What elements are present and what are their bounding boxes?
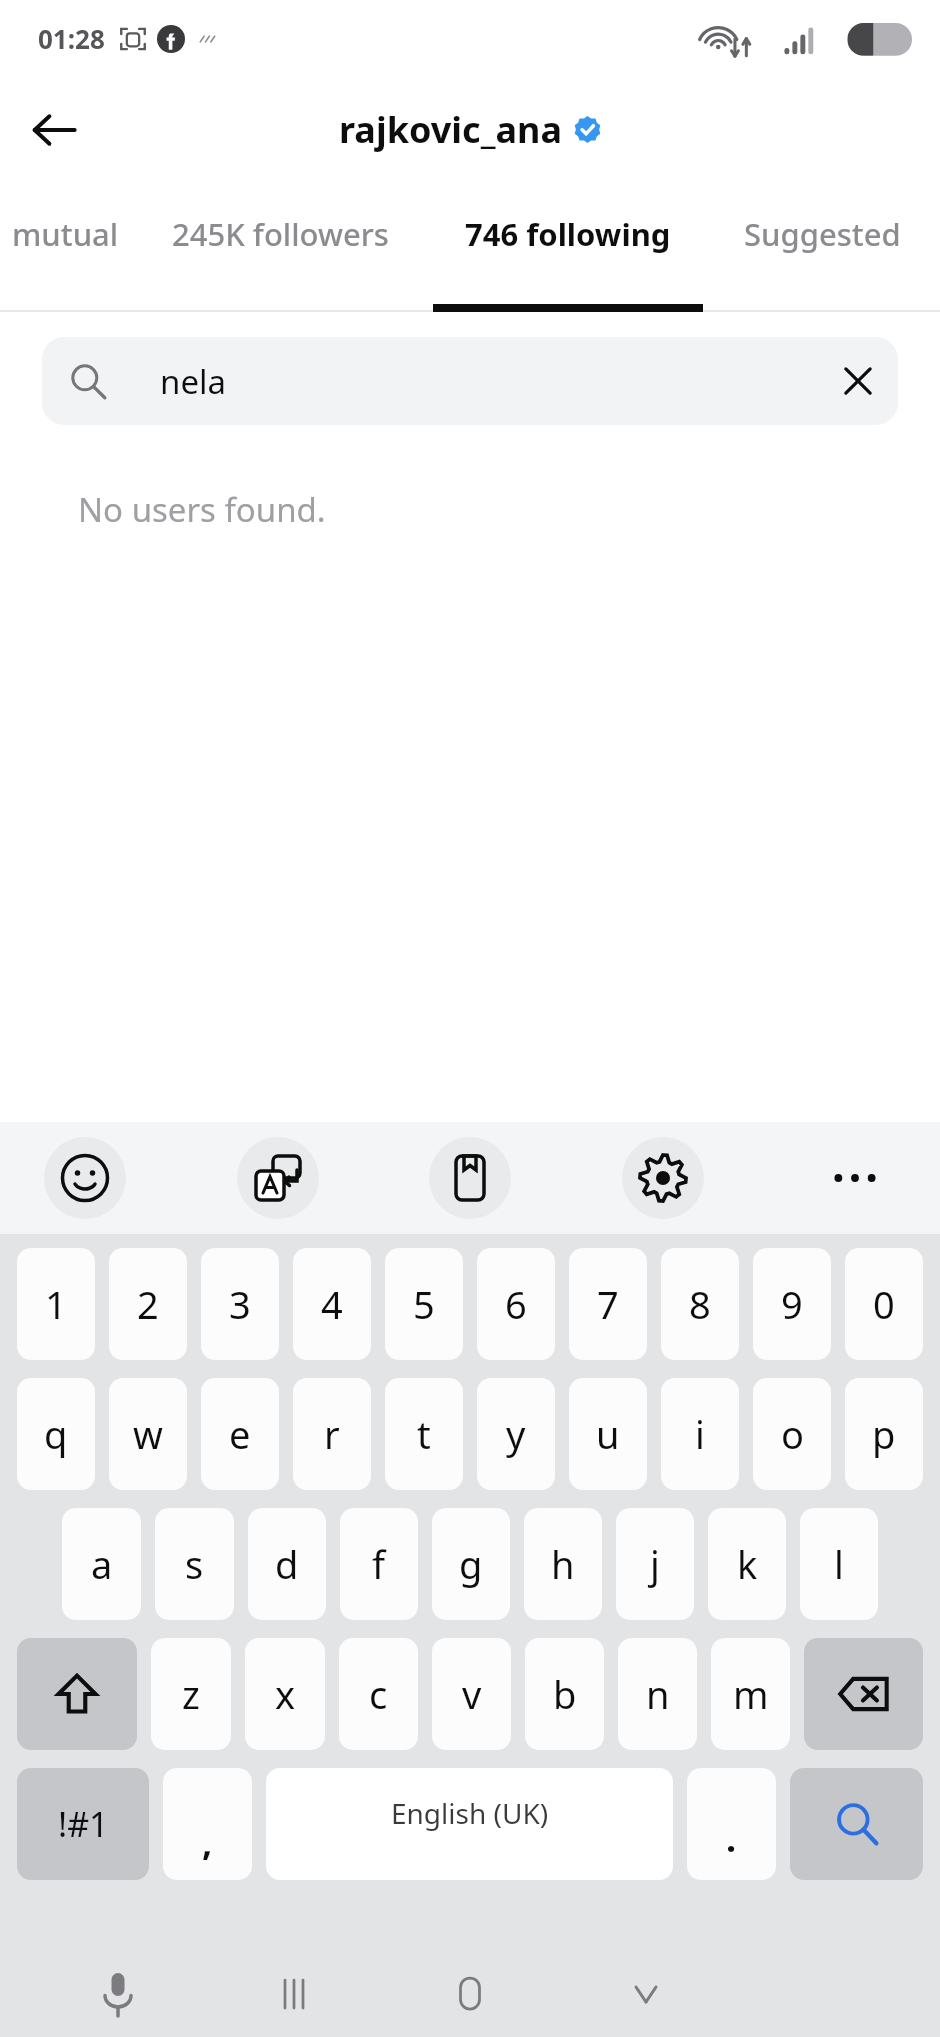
staticText: 3 <box>229 1278 251 1330</box>
staticText: No users found. <box>78 487 326 532</box>
button[interactable]: Voice input <box>30 1950 206 2037</box>
button[interactable]: Hide keyboard <box>558 1950 734 2037</box>
button[interactable]: 1 <box>17 1248 95 1360</box>
button[interactable]: Emoji <box>44 1137 126 1219</box>
staticText: m <box>733 1668 769 1720</box>
button[interactable]: More options <box>814 1137 896 1219</box>
button[interactable]: Home <box>382 1950 558 2037</box>
staticText: n <box>646 1668 670 1720</box>
button[interactable]: j <box>616 1508 694 1620</box>
button[interactable]: z <box>151 1638 231 1750</box>
button[interactable]: 2 <box>109 1248 187 1360</box>
staticText: e <box>229 1408 251 1460</box>
button[interactable]: r <box>293 1378 371 1490</box>
button[interactable]: x <box>245 1638 325 1750</box>
button[interactable]: u <box>569 1378 647 1490</box>
staticText: o <box>781 1408 804 1460</box>
button[interactable]: n <box>618 1638 697 1750</box>
staticText: 746 following <box>465 213 671 255</box>
staticText: 1 <box>45 1278 67 1330</box>
button[interactable]: 245K followers <box>130 182 430 312</box>
staticText: f <box>372 1538 386 1590</box>
staticText: 6 <box>505 1278 527 1330</box>
staticText: . <box>726 1814 737 1863</box>
button[interactable]: Back <box>18 94 90 166</box>
button[interactable]: 0 <box>845 1248 923 1360</box>
button[interactable]: Translate <box>237 1137 319 1219</box>
button[interactable]: 746 following <box>430 182 705 312</box>
staticText: s <box>185 1538 204 1590</box>
button[interactable]: Keyboard settings <box>622 1137 704 1219</box>
staticText: a <box>91 1538 113 1590</box>
button[interactable]: Clear search <box>818 341 898 421</box>
button[interactable]: a <box>62 1508 141 1620</box>
button[interactable]: d <box>248 1508 326 1620</box>
staticText: 8 <box>689 1278 711 1330</box>
staticText: 01:28 <box>38 21 105 56</box>
button[interactable]: s <box>155 1508 234 1620</box>
button[interactable]: mutual <box>0 182 130 312</box>
button[interactable]: b <box>525 1638 604 1750</box>
button[interactable]: 4 <box>293 1248 371 1360</box>
button[interactable]: Search <box>790 1768 923 1880</box>
button[interactable]: c <box>339 1638 418 1750</box>
staticText: l <box>834 1538 844 1590</box>
staticText: w <box>133 1408 163 1460</box>
button[interactable]: w <box>109 1378 187 1490</box>
button[interactable]: nela <box>42 337 898 425</box>
button[interactable]: Backspace <box>804 1638 923 1750</box>
staticText: g <box>459 1538 483 1590</box>
button[interactable]: 7 <box>569 1248 647 1360</box>
staticText: t <box>417 1408 431 1460</box>
button[interactable]: f <box>340 1508 418 1620</box>
button[interactable]: t <box>385 1378 463 1490</box>
button[interactable]: q <box>17 1378 95 1490</box>
staticText: z <box>182 1668 200 1720</box>
button[interactable]: Shift <box>17 1638 137 1750</box>
staticText: p <box>872 1408 896 1460</box>
staticText: h <box>551 1538 575 1590</box>
button[interactable]: 9 <box>753 1248 831 1360</box>
button[interactable]: y <box>477 1378 555 1490</box>
button[interactable]: k <box>708 1508 786 1620</box>
button[interactable]: o <box>753 1378 831 1490</box>
staticText: i <box>695 1408 705 1460</box>
staticText: rajkovic_ana <box>339 105 562 154</box>
staticText: j <box>650 1538 660 1590</box>
staticText: Suggested <box>744 213 901 255</box>
button[interactable]: Suggested <box>705 182 940 312</box>
button[interactable]: Clipboard <box>429 1137 511 1219</box>
staticText: , <box>202 1817 213 1866</box>
staticText: 4 <box>321 1278 343 1330</box>
button[interactable]: l <box>800 1508 878 1620</box>
button[interactable]: . <box>687 1768 776 1880</box>
staticText: d <box>275 1538 299 1590</box>
button[interactable]: v <box>432 1638 511 1750</box>
button[interactable]: m <box>711 1638 790 1750</box>
staticText: !#1 <box>58 1801 109 1847</box>
button[interactable]: 8 <box>661 1248 739 1360</box>
staticText: English (UK) <box>391 1794 549 1832</box>
staticText: x <box>275 1668 296 1720</box>
staticText: mutual <box>12 213 119 255</box>
button[interactable]: e <box>201 1378 279 1490</box>
button[interactable]: g <box>432 1508 510 1620</box>
staticText: b <box>553 1668 577 1720</box>
button[interactable]: i <box>661 1378 739 1490</box>
staticText: 0 <box>873 1278 895 1330</box>
staticText: 9 <box>781 1278 803 1330</box>
staticText: y <box>506 1408 526 1460</box>
button[interactable]: 5 <box>385 1248 463 1360</box>
button[interactable]: , <box>163 1768 252 1880</box>
staticText: k <box>737 1538 758 1590</box>
button[interactable]: 3 <box>201 1248 279 1360</box>
button[interactable]: h <box>524 1508 602 1620</box>
button[interactable]: p <box>845 1378 923 1490</box>
button[interactable]: 6 <box>477 1248 555 1360</box>
button[interactable]: English (UK) <box>266 1768 673 1880</box>
button[interactable]: Recents <box>206 1950 382 2037</box>
staticText: v <box>462 1668 482 1720</box>
staticText: 245K followers <box>172 213 389 255</box>
button[interactable]: !#1 <box>17 1768 149 1880</box>
staticText: nela <box>160 359 227 404</box>
